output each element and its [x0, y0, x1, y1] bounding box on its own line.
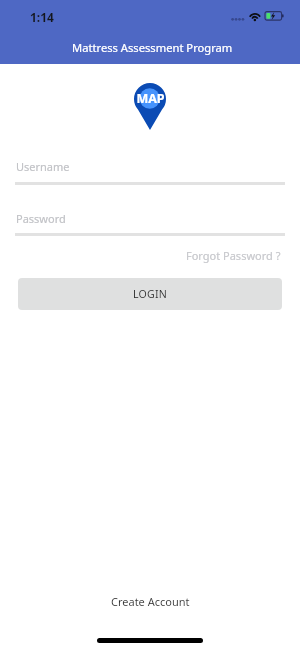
button[interactable]: Create Account — [90, 586, 210, 610]
button[interactable]: Forgot Password ? — [180, 241, 281, 263]
staticText: 1:14 — [30, 9, 54, 25]
staticText: Forgot Password ? — [186, 248, 281, 263]
other: Mattress Assessment Program logo — [134, 83, 166, 130]
staticText: MAP — [136, 90, 165, 107]
staticText: Password — [16, 211, 66, 226]
staticText: Create Account — [111, 594, 190, 609]
staticText: Mattress Assessment Program — [72, 40, 233, 55]
button[interactable]: Username — [15, 151, 285, 185]
button[interactable]: LOGIN — [18, 278, 282, 310]
staticText: Username — [16, 159, 70, 174]
staticText: LOGIN — [133, 287, 167, 301]
button[interactable]: Password — [15, 203, 285, 236]
